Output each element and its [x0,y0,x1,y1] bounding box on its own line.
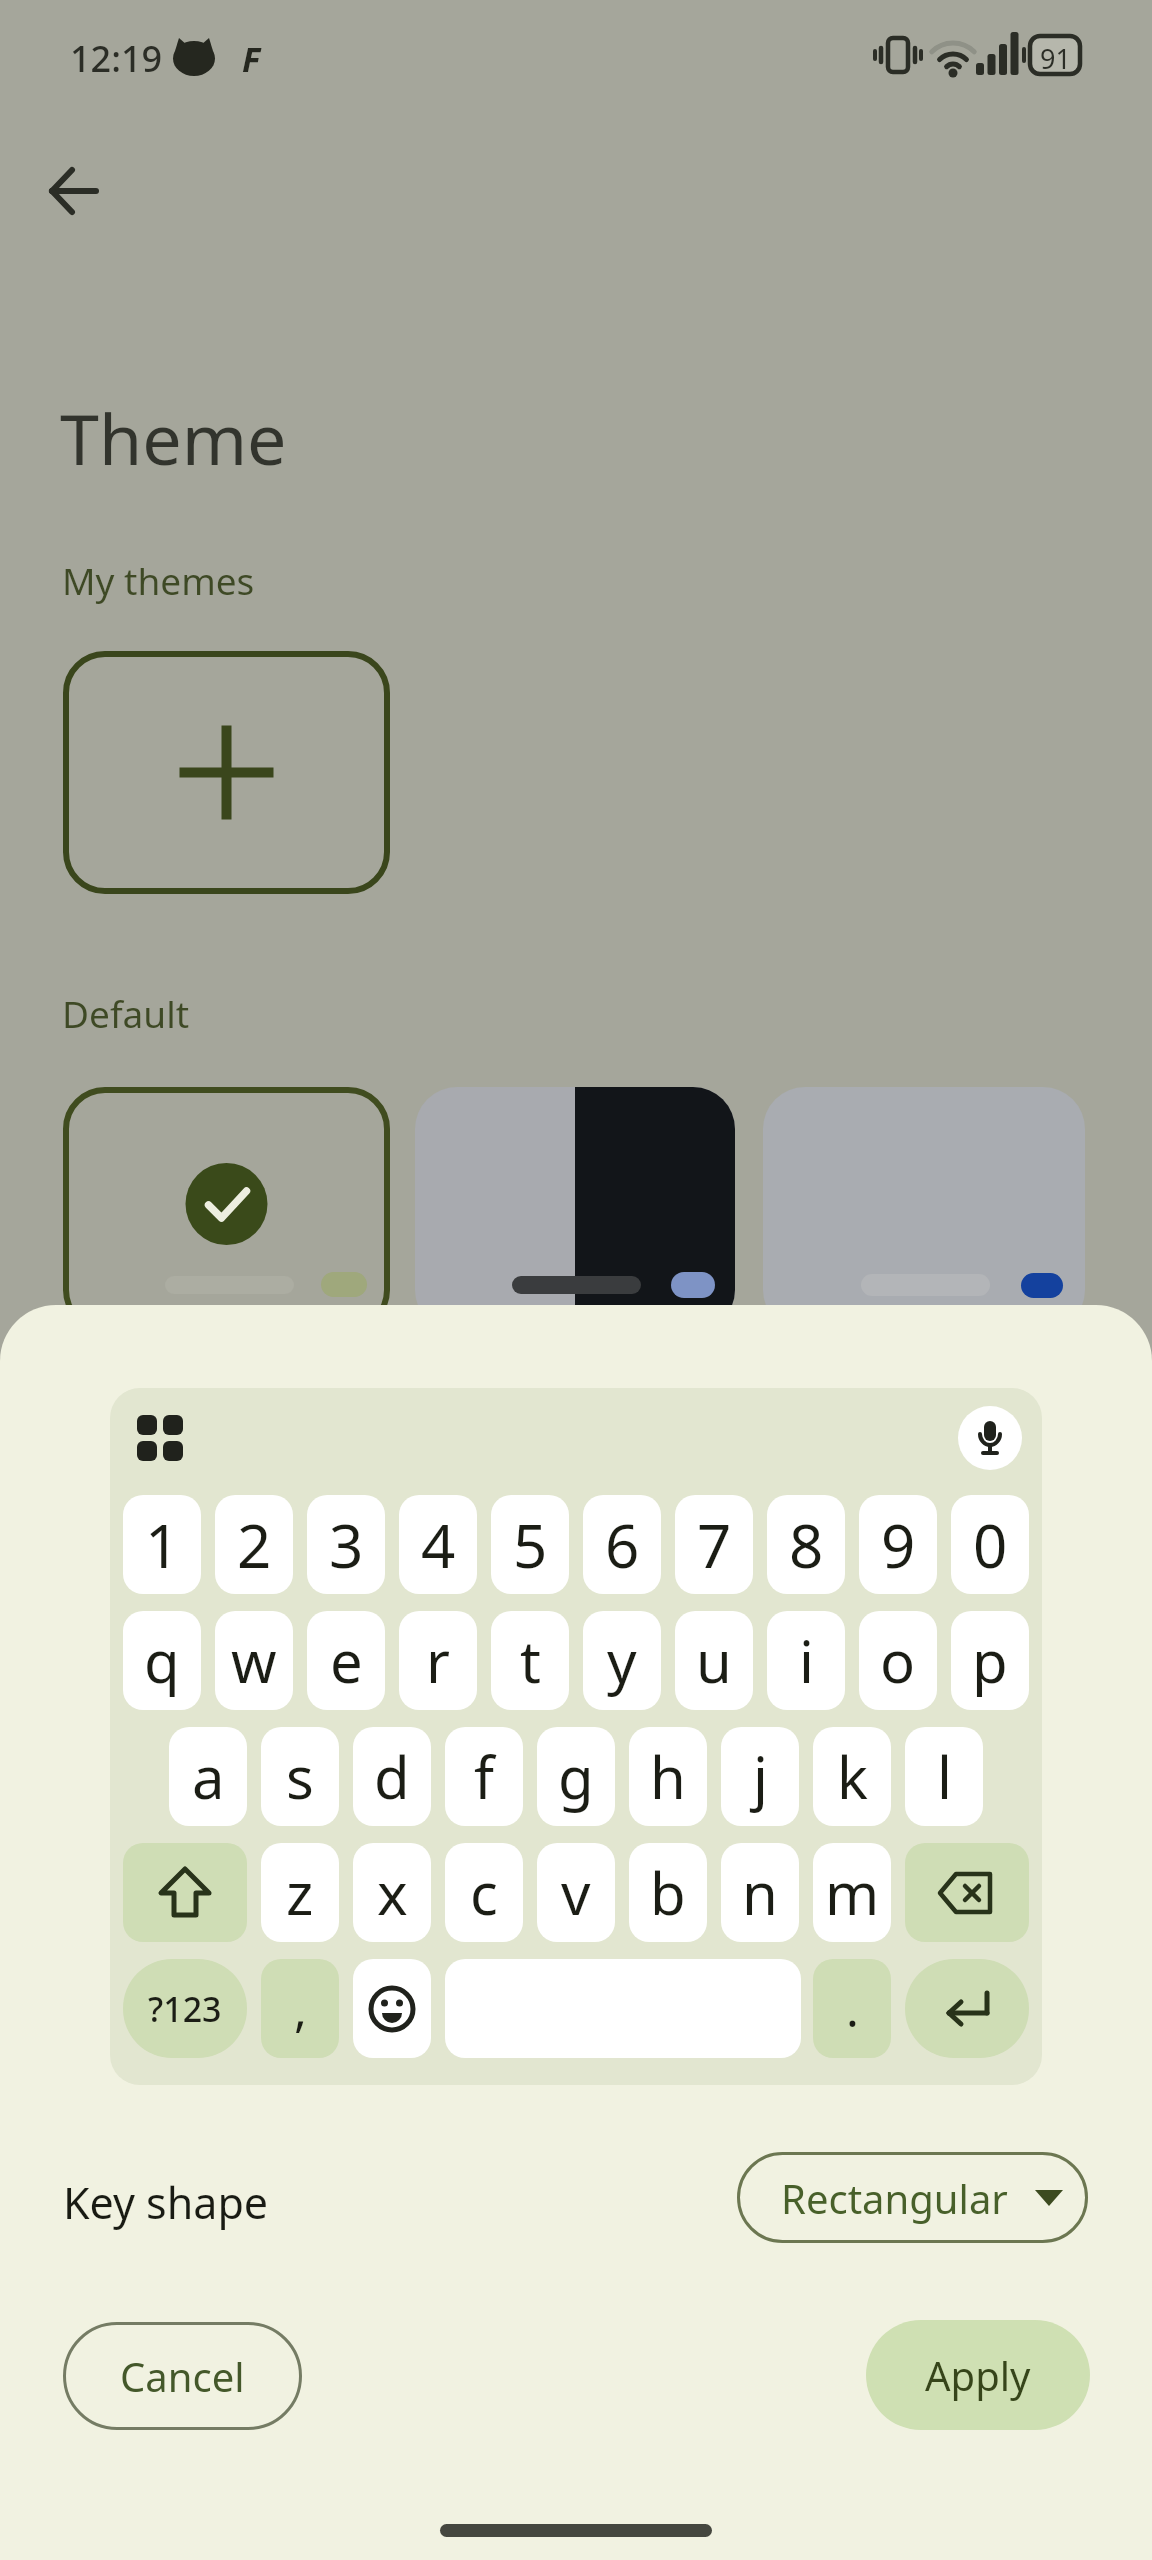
button[interactable]: 9 [859,1495,937,1594]
button[interactable]: l [905,1727,983,1826]
staticText: e [330,1621,363,1700]
button[interactable]: q [123,1611,201,1710]
staticText: k [837,1737,868,1816]
button[interactable]: d [353,1727,431,1826]
button[interactable]: Rectangular [737,2152,1088,2243]
staticText: 2 [237,1504,272,1586]
staticText: Cancel [120,2349,245,2403]
button[interactable]: 2 [215,1495,293,1594]
staticText: 91 [1040,40,1071,77]
staticText: v [561,1853,591,1932]
staticText: 7 [697,1504,732,1586]
button[interactable] [415,1087,735,1332]
staticText: Default [62,988,190,1038]
button[interactable]: g [537,1727,615,1826]
button[interactable]: 7 [675,1495,753,1594]
staticText: 4 [421,1504,456,1586]
button[interactable]: z [261,1843,339,1942]
button[interactable] [445,1959,801,2058]
staticText: w [231,1621,277,1700]
button[interactable]: k [813,1727,891,1826]
staticText: 3 [329,1504,364,1586]
staticText: n [742,1853,778,1932]
button[interactable]: p [951,1611,1029,1710]
button[interactable] [63,1087,390,1332]
button[interactable]: r [399,1611,477,1710]
staticText: q [144,1621,180,1700]
button[interactable]: h [629,1727,707,1826]
staticText: Rectangular [781,2171,1008,2225]
staticText: . [846,1976,859,2041]
button[interactable]: Apply [866,2320,1090,2430]
staticText: u [696,1621,732,1700]
button[interactable]: u [675,1611,753,1710]
staticText: c [470,1853,498,1932]
button[interactable]: 4 [399,1495,477,1594]
button[interactable]: , [261,1959,339,2058]
button[interactable]: 1 [123,1495,201,1594]
button[interactable]: o [859,1611,937,1710]
staticText: z [286,1853,314,1932]
button[interactable]: e [307,1611,385,1710]
staticText: 8 [789,1504,824,1586]
button[interactable]: v [537,1843,615,1942]
staticText: ?123 [148,1986,222,2032]
staticText: , [294,1976,307,2041]
staticText: Theme [60,390,287,485]
button[interactable]: 0 [951,1495,1029,1594]
staticText: i [799,1621,814,1700]
button[interactable]: w [215,1611,293,1710]
button[interactable] [353,1959,431,2058]
button[interactable]: 6 [583,1495,661,1594]
staticText: Key shape [63,2173,269,2232]
staticText: d [374,1737,410,1816]
button[interactable]: a [169,1727,247,1826]
staticText: t [520,1621,541,1700]
button[interactable]: c [445,1843,523,1942]
button[interactable]: j [721,1727,799,1826]
button[interactable] [905,1959,1029,2058]
staticText: j [753,1737,768,1816]
staticText: o [880,1621,916,1700]
staticText: r [426,1621,450,1700]
button[interactable] [763,1087,1085,1332]
button[interactable] [958,1406,1022,1470]
button[interactable] [40,158,106,224]
button[interactable]: Cancel [63,2322,302,2430]
button[interactable]: t [491,1611,569,1710]
button[interactable]: . [813,1959,891,2058]
staticText: 1 [145,1504,180,1586]
button[interactable] [905,1843,1029,1942]
staticText: F [242,36,261,82]
staticText: 0 [973,1504,1008,1586]
staticText: p [972,1621,1008,1700]
staticText: 5 [513,1504,548,1586]
button[interactable]: y [583,1611,661,1710]
button[interactable]: n [721,1843,799,1942]
staticText: 6 [605,1504,640,1586]
button[interactable]: i [767,1611,845,1710]
staticText: 12:19 [70,34,163,83]
button[interactable]: b [629,1843,707,1942]
button[interactable]: 8 [767,1495,845,1594]
staticText: g [558,1737,594,1816]
staticText: My themes [62,555,255,605]
staticText: b [650,1853,686,1932]
button[interactable]: s [261,1727,339,1826]
button[interactable] [63,651,390,894]
staticText: 9 [881,1504,916,1586]
staticText: s [286,1737,314,1816]
button[interactable]: x [353,1843,431,1942]
button[interactable]: f [445,1727,523,1826]
staticText: l [937,1737,952,1816]
button[interactable]: m [813,1843,891,1942]
button[interactable] [123,1843,247,1942]
button[interactable]: 5 [491,1495,569,1594]
button[interactable]: ?123 [123,1959,247,2058]
staticText: h [650,1737,686,1816]
staticText: x [377,1853,408,1932]
button[interactable]: 3 [307,1495,385,1594]
staticText: f [474,1737,494,1816]
staticText: Apply [925,2348,1031,2402]
staticText: m [825,1853,880,1932]
